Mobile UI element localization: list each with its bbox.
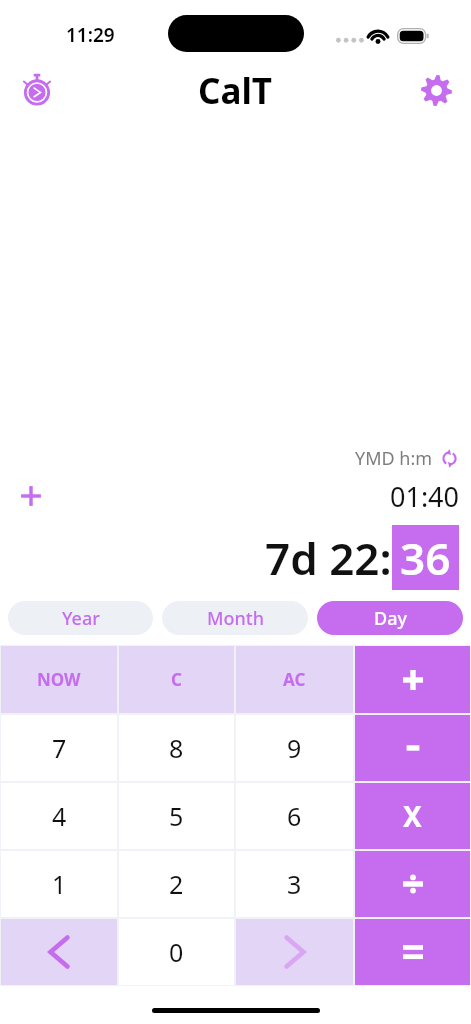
staticText: 2 [169,867,184,901]
button[interactable]: Back [1,919,117,985]
staticText: 01:40 [390,478,460,512]
staticText: 0 [169,935,184,969]
button[interactable]: Equals [355,919,470,985]
button[interactable]: Minus [355,715,470,781]
staticText: 6 [287,799,302,833]
staticText: CalT [198,67,273,115]
staticText: NOW [37,668,81,691]
button[interactable]: 1 [1,851,117,917]
staticText: 3 [287,867,302,901]
button[interactable]: X [355,783,470,849]
button[interactable]: Plus [355,646,470,713]
staticText: 7d 22: [265,528,392,588]
staticText: YMD h:m [355,446,433,471]
button[interactable]: AC [236,646,353,713]
staticText: 9 [287,731,302,765]
button[interactable]: Add [16,481,46,511]
staticText: 11:29 [66,22,115,48]
button[interactable]: Timer [19,71,55,107]
button[interactable]: 3 [236,851,353,917]
button[interactable]: 2 [119,851,234,917]
staticText: 8 [169,731,184,765]
button[interactable]: 4 [1,783,117,849]
button[interactable]: 0 [119,919,234,985]
staticText: X [403,797,422,835]
button[interactable]: 8 [119,715,234,781]
button[interactable]: 9 [236,715,353,781]
button[interactable]: Settings [418,72,454,108]
staticText: Year [62,606,100,631]
staticText: 4 [52,799,67,833]
button[interactable]: Year [8,601,153,635]
button[interactable]: 5 [119,783,234,849]
staticText: 1 [52,867,67,901]
button[interactable]: C [119,646,234,713]
button[interactable]: Month [162,601,308,635]
button[interactable]: NOW [1,646,117,713]
staticText: 5 [169,799,184,833]
staticText: Day [374,606,407,631]
button[interactable]: Switch time format [440,449,459,468]
button[interactable]: Divide [355,851,470,917]
staticText: C [171,668,182,691]
button[interactable]: Forward [236,919,353,985]
staticText: Month [207,606,264,631]
staticText: 36 [400,528,451,588]
button[interactable]: 6 [236,783,353,849]
staticText: AC [283,668,306,691]
staticText: 7 [52,731,67,765]
button[interactable]: 7 [1,715,117,781]
button[interactable]: Day [317,601,463,635]
